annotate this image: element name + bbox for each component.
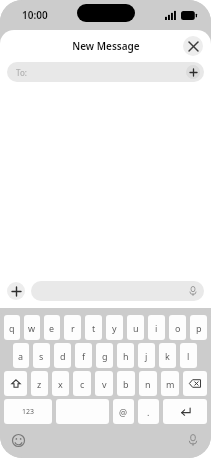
button[interactable]: g (96, 343, 113, 368)
staticText: m (166, 378, 175, 390)
button[interactable]: r (64, 315, 81, 340)
button[interactable]: Backspace (183, 371, 207, 396)
button[interactable]: w (24, 315, 40, 340)
staticText: o (175, 322, 181, 334)
staticText: . (147, 406, 150, 418)
button[interactable]: Close (183, 36, 203, 56)
button[interactable]: t (85, 315, 102, 340)
button[interactable]: Voice input (187, 434, 199, 446)
button[interactable]: d (54, 343, 71, 368)
staticText: t (92, 322, 96, 334)
staticText: 123 (22, 407, 35, 417)
button[interactable]: c (73, 371, 91, 396)
button[interactable]: i (148, 315, 165, 340)
button[interactable]: Shift (4, 371, 27, 396)
staticText: y (112, 322, 117, 334)
button[interactable]: o (169, 315, 186, 340)
button[interactable]: 123 (4, 399, 52, 424)
staticText: u (133, 322, 139, 334)
staticText: n (145, 378, 151, 390)
staticText: x (58, 378, 63, 390)
staticText: @ (119, 406, 128, 418)
staticText: 10:00 (22, 8, 48, 22)
button[interactable]: s (33, 343, 50, 368)
staticText: i (155, 322, 158, 334)
button[interactable]: b (117, 371, 135, 396)
button[interactable]: y (106, 315, 123, 340)
staticText: w (28, 322, 36, 334)
button[interactable]: Voice input (31, 281, 204, 301)
staticText: g (102, 350, 108, 362)
button[interactable]: v (95, 371, 113, 396)
staticText: c (80, 378, 85, 390)
staticText: a (18, 350, 24, 362)
button[interactable]: To: (7, 62, 204, 82)
staticText: To: (16, 67, 27, 78)
staticText: d (60, 350, 66, 362)
button[interactable]: m (161, 371, 179, 396)
staticText: e (49, 322, 55, 334)
staticText: b (123, 378, 129, 390)
button[interactable]: e (44, 315, 60, 340)
button[interactable]: a (13, 343, 29, 368)
button[interactable]: n (139, 371, 157, 396)
button[interactable]: u (127, 315, 144, 340)
staticText: j (145, 350, 148, 362)
staticText: l (187, 350, 190, 362)
button[interactable]: Add contact (186, 65, 200, 79)
staticText: v (102, 378, 107, 390)
staticText: f (82, 350, 86, 362)
staticText: q (9, 322, 15, 334)
button[interactable]: Add attachment (7, 282, 25, 300)
button[interactable]: z (31, 371, 48, 396)
button[interactable]: @ (113, 399, 134, 424)
staticText: h (123, 350, 129, 362)
button[interactable]: j (138, 343, 155, 368)
button[interactable]: . (138, 399, 159, 424)
other: Voice input (188, 286, 198, 296)
button[interactable]: p (190, 315, 207, 340)
staticText: p (196, 322, 202, 334)
staticText: r (71, 322, 75, 334)
button[interactable]: h (117, 343, 134, 368)
button[interactable]: Enter (163, 399, 207, 424)
button[interactable]: Emoji (12, 434, 25, 447)
button[interactable]: q (4, 315, 20, 340)
staticText: New Message (72, 39, 140, 53)
button[interactable]: x (52, 371, 69, 396)
button[interactable]: f (75, 343, 92, 368)
staticText: k (165, 350, 170, 362)
staticText: s (39, 350, 44, 362)
staticText: z (37, 378, 42, 390)
button[interactable]: l (180, 343, 197, 368)
button[interactable]: k (159, 343, 176, 368)
